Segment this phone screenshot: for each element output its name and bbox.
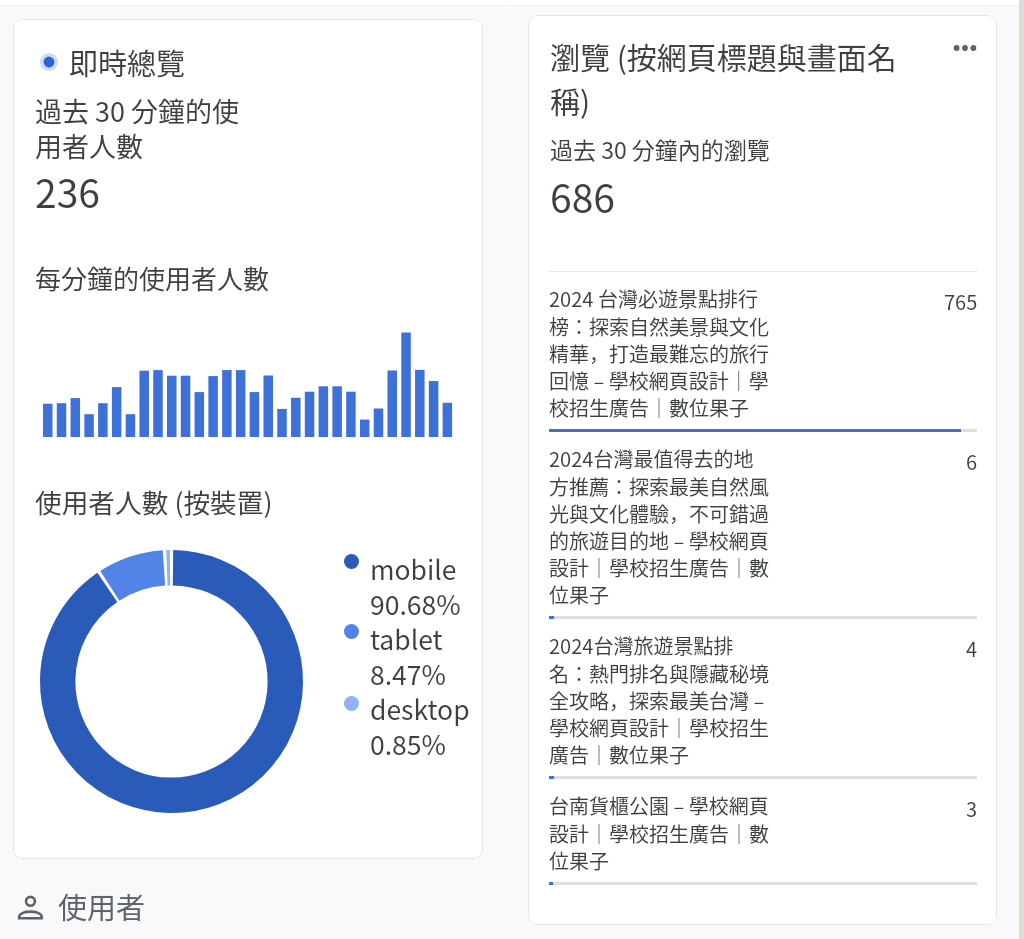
staticText: 使用者: [58, 885, 146, 925]
button[interactable]: 2024 台灣必遊景點排行 榜：探索自然美景與文化 精華，打造最難忘的旅行 回憶…: [549, 272, 977, 432]
staticText: 每分鐘的使用者人數: [35, 259, 270, 297]
button[interactable]: 2024台灣旅遊景點排 名：熱門排名與隱藏秘境 全攻略，探索最美台灣 – 學校網…: [549, 619, 977, 779]
button[interactable]: More options: [947, 30, 983, 66]
staticText: 2024台灣旅遊景點排 名：熱門排名與隱藏秘境 全攻略，探索最美台灣 – 學校網…: [549, 631, 779, 769]
staticText: 6: [966, 447, 978, 476]
staticText: 瀏覽 (按網頁標題與畫面名稱): [550, 34, 900, 122]
other: Users: [15, 888, 39, 912]
staticText: 4: [966, 634, 978, 663]
staticText: 2024 台灣必遊景點排行 榜：探索自然美景與文化 精華，打造最難忘的旅行 回憶…: [549, 284, 779, 422]
staticText: 3: [966, 794, 978, 823]
staticText: 過去 30 分鐘內的瀏覽: [550, 132, 770, 165]
staticText: 686: [550, 168, 615, 224]
staticText: 即時總覽: [69, 41, 186, 83]
staticText: 台南貨櫃公園 – 學校網頁 設計｜學校招生廣告｜數 位果子: [549, 791, 779, 875]
button[interactable]: 台南貨櫃公園 – 學校網頁 設計｜學校招生廣告｜數 位果子: [549, 779, 977, 885]
staticText: 2024台灣最值得去的地 方推薦：探索最美自然風 光與文化體驗，不可錯過 的旅遊…: [549, 444, 779, 609]
staticText: 過去 30 分鐘的使 用者人數: [35, 91, 240, 165]
staticText: 使用者人數 (按裝置): [35, 482, 273, 521]
staticText: 765: [944, 287, 978, 316]
staticText: mobile 90.68% tablet 8.47% desktop 0.85%: [370, 549, 470, 763]
button[interactable]: Users: [14, 888, 102, 928]
button[interactable]: 2024台灣最值得去的地 方推薦：探索最美自然風 光與文化體驗，不可錯過 的旅遊…: [549, 432, 977, 619]
staticText: 236: [35, 163, 100, 219]
